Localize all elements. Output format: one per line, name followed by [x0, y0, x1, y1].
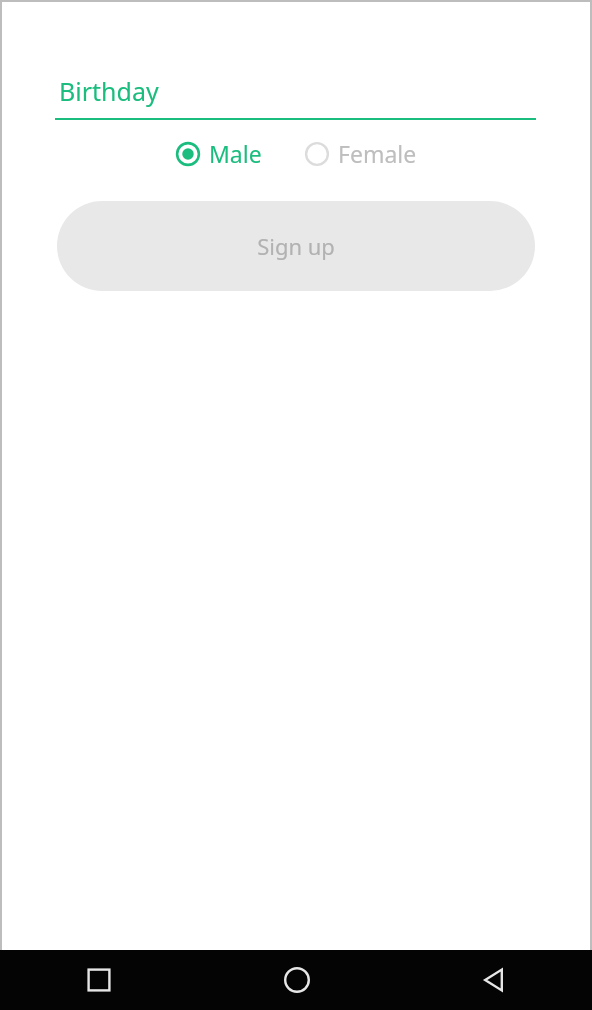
- staticText: Female: [338, 138, 417, 169]
- button[interactable]: Male: [171, 134, 266, 173]
- staticText: Male: [209, 138, 262, 169]
- button[interactable]: Home: [198, 950, 395, 1010]
- button[interactable]: Back: [395, 950, 592, 1010]
- staticText: Sign up: [257, 231, 335, 261]
- button[interactable]: Female: [300, 134, 421, 173]
- button[interactable]: Sign up: [57, 201, 535, 291]
- button[interactable]: Birthday: [0, 0, 592, 122]
- staticText: Birthday: [59, 74, 159, 108]
- button[interactable]: Recent apps: [0, 950, 198, 1010]
